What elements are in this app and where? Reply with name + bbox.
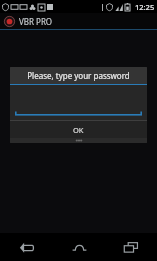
button[interactable]: Password field [15, 104, 142, 116]
button[interactable]: Back [0, 233, 53, 261]
button[interactable]: Recent apps [105, 233, 157, 261]
staticText: OK [73, 125, 84, 135]
staticText: VBR PRO [19, 16, 53, 27]
button[interactable]: OK [10, 121, 147, 138]
button[interactable]: Home [53, 233, 105, 261]
staticText: Please, type your password [27, 70, 130, 81]
staticText: 12:25 [135, 2, 155, 12]
button[interactable]: VBR PRO [0, 13, 157, 29]
